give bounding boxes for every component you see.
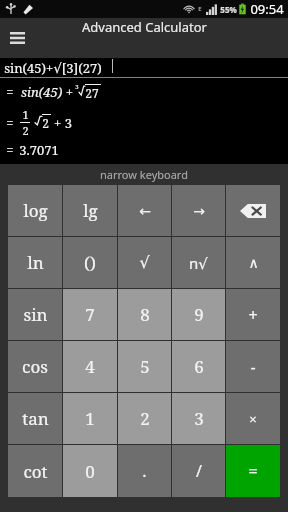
staticText: cot	[23, 460, 48, 483]
staticText: sin	[23, 303, 48, 326]
button[interactable]: cos	[8, 341, 62, 392]
staticText: √	[139, 253, 150, 272]
button[interactable]: 6	[172, 341, 225, 392]
staticText: E	[198, 5, 202, 13]
button[interactable]: ln	[8, 237, 62, 288]
staticText: log	[23, 199, 48, 222]
staticText: sin(45)+√[3](27)	[4, 59, 102, 77]
button[interactable]: 9	[172, 289, 225, 340]
staticText: 27	[85, 85, 99, 101]
staticText: 6	[194, 355, 204, 378]
button[interactable]: 4	[63, 341, 117, 392]
button[interactable]: /	[172, 445, 225, 497]
staticText: =	[6, 141, 14, 159]
staticText: ∧	[248, 255, 259, 271]
staticText: lg	[83, 199, 98, 222]
staticText: ×	[249, 410, 257, 428]
button[interactable]: 3	[172, 393, 225, 444]
staticText: + 3	[54, 114, 72, 132]
staticText: narrow keyboard	[100, 167, 188, 182]
staticText: =	[6, 83, 14, 101]
button[interactable]: √	[118, 237, 171, 288]
staticText: /	[196, 460, 202, 482]
button[interactable]: →	[172, 185, 225, 236]
staticText: 0	[85, 460, 95, 483]
button[interactable]: tan	[8, 393, 62, 444]
button[interactable]: .	[118, 445, 171, 497]
button[interactable]: 0	[63, 445, 117, 497]
staticText: 1	[85, 407, 95, 430]
button[interactable]: ←	[118, 185, 171, 236]
button[interactable]: 2	[118, 393, 171, 444]
button[interactable]: log	[8, 185, 62, 236]
staticText: ln	[27, 251, 44, 274]
staticText: Advanced Calculator	[82, 18, 207, 36]
staticText: =	[6, 114, 14, 132]
button[interactable]: lg	[63, 185, 117, 236]
staticText: ()	[84, 251, 96, 274]
button[interactable]: Menu	[0, 21, 34, 55]
staticText: ←	[139, 203, 151, 219]
button[interactable]: cot	[8, 445, 62, 497]
staticText: =	[248, 460, 258, 482]
staticText: 9	[194, 303, 204, 326]
button[interactable]: n√	[172, 237, 225, 288]
staticText: 2	[140, 407, 150, 430]
staticText: 09:54	[250, 0, 284, 18]
button[interactable]: -	[226, 341, 280, 392]
staticText: 7	[85, 303, 95, 326]
button[interactable]: ×	[226, 393, 280, 444]
button[interactable]: sin	[8, 289, 62, 340]
button[interactable]: =	[226, 445, 280, 497]
staticText: 8	[140, 303, 150, 326]
staticText: 4	[85, 355, 95, 378]
button[interactable]: 5	[118, 341, 171, 392]
button[interactable]: ()	[63, 237, 117, 288]
staticText: n√	[189, 253, 208, 273]
button[interactable]: ∧	[226, 237, 280, 288]
staticText: 3	[75, 83, 79, 91]
staticText: cos	[22, 355, 48, 378]
staticText: -	[250, 356, 256, 378]
staticText: 3.7071	[19, 141, 59, 159]
staticText: +	[248, 304, 258, 326]
staticText: .	[142, 460, 147, 482]
staticText: 5	[140, 355, 150, 378]
button[interactable]: 1	[63, 393, 117, 444]
staticText: 3	[194, 407, 204, 430]
staticText: 55%	[220, 4, 237, 15]
staticText: sin(45) +	[19, 83, 75, 101]
button[interactable]: +	[226, 289, 280, 340]
staticText: 1	[22, 107, 29, 122]
staticText: →	[193, 203, 205, 219]
button[interactable]: 7	[63, 289, 117, 340]
button[interactable]: Backspace	[226, 185, 280, 236]
staticText: 2	[22, 123, 29, 138]
staticText: tan	[22, 407, 49, 430]
button[interactable]: 8	[118, 289, 171, 340]
staticText: 2	[42, 115, 49, 131]
